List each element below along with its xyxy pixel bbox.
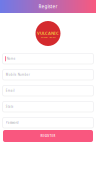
button[interactable]: Password xyxy=(3,117,93,128)
staticText: Mobile Number xyxy=(6,73,30,77)
staticText: REGISTER xyxy=(40,134,55,138)
button[interactable]: State xyxy=(3,101,93,112)
button[interactable]: REGISTER xyxy=(3,130,93,142)
staticText: State xyxy=(6,105,14,109)
staticText: Register xyxy=(38,3,57,10)
staticText: VULCANIC xyxy=(37,30,59,36)
staticText: Email xyxy=(6,89,15,93)
button[interactable]: Mobile Number xyxy=(3,69,93,80)
staticText: Password xyxy=(6,121,19,125)
button[interactable]: Email xyxy=(3,85,93,96)
staticText: Name xyxy=(7,57,16,61)
button[interactable]: Name xyxy=(3,53,93,64)
staticText: COFFEE ROAST xyxy=(40,36,55,38)
